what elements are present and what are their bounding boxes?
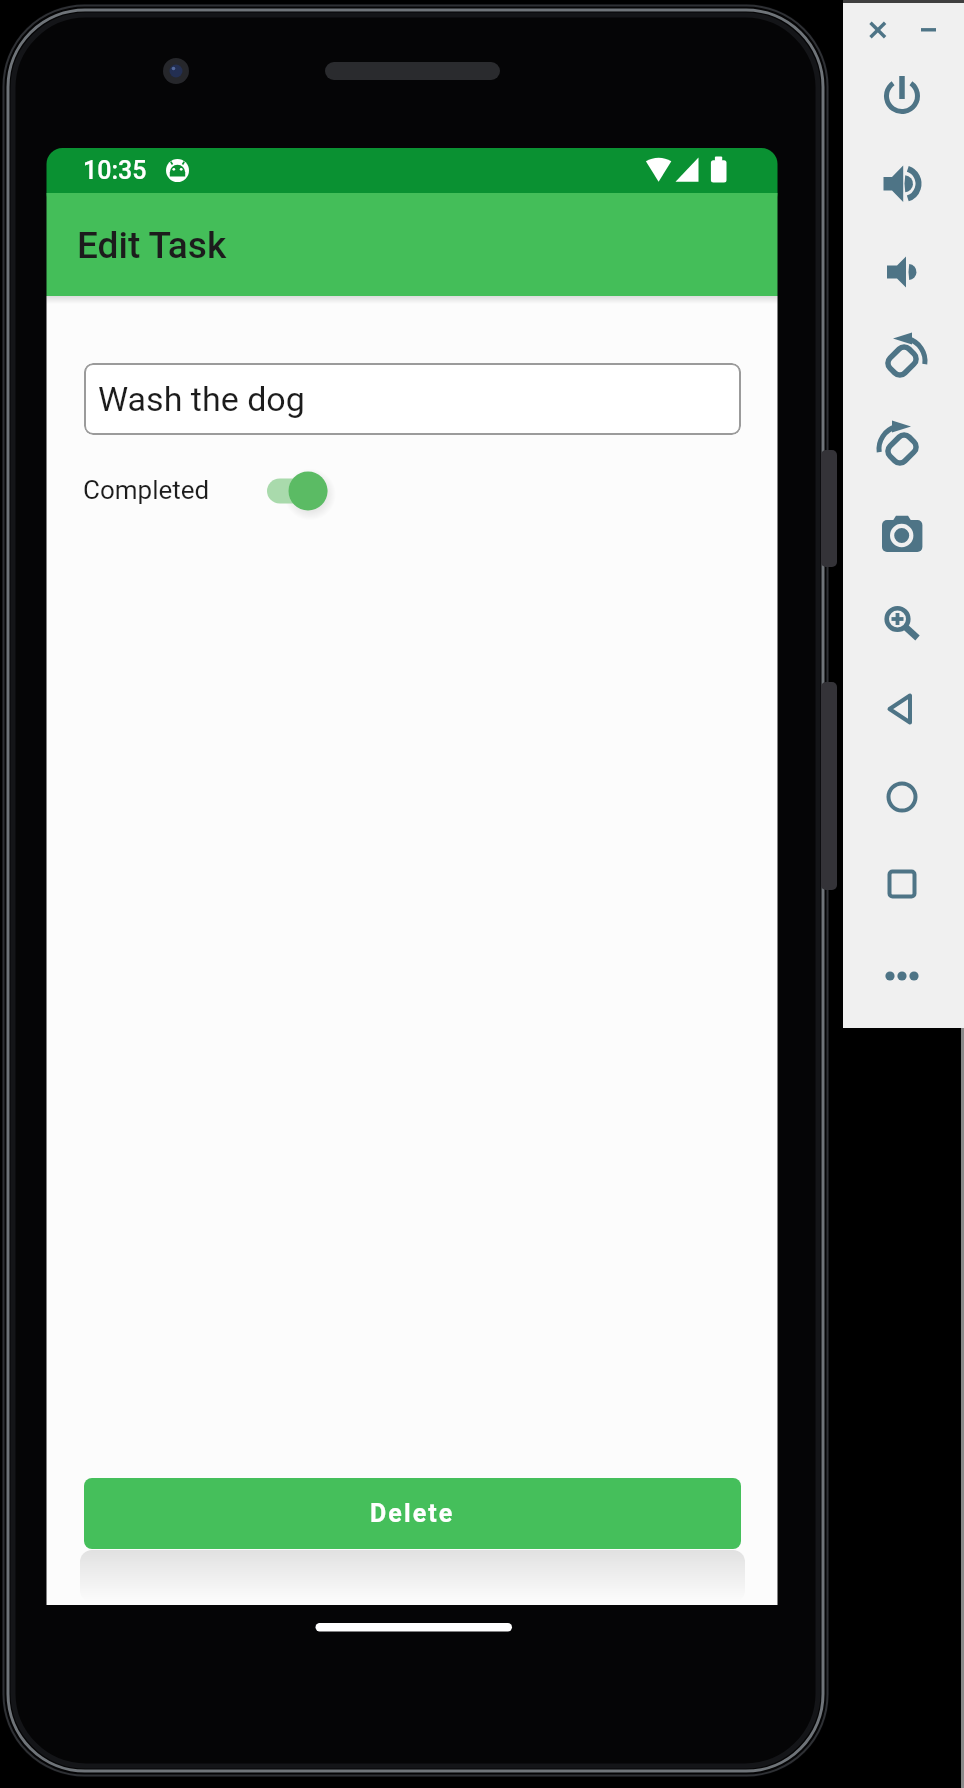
staticText: Completed <box>83 475 210 505</box>
button[interactable] <box>263 466 333 516</box>
button[interactable] <box>878 952 926 1000</box>
staticText: Wash the dog <box>98 379 305 419</box>
button[interactable] <box>878 247 926 295</box>
staticText: Edit Task <box>77 224 227 267</box>
button[interactable] <box>862 14 894 46</box>
button[interactable]: Wash the dog <box>84 363 741 435</box>
button[interactable] <box>878 597 926 645</box>
staticText: Delete <box>370 1499 455 1528</box>
button[interactable] <box>912 14 944 46</box>
staticText: 10:35 <box>83 156 147 185</box>
button[interactable] <box>878 773 926 821</box>
button[interactable] <box>878 159 926 207</box>
button[interactable]: Delete <box>84 1478 741 1549</box>
button[interactable] <box>878 72 926 120</box>
button[interactable] <box>878 422 926 470</box>
button[interactable] <box>878 685 926 733</box>
button[interactable] <box>878 334 926 382</box>
button[interactable] <box>878 510 926 558</box>
button[interactable] <box>878 860 926 908</box>
